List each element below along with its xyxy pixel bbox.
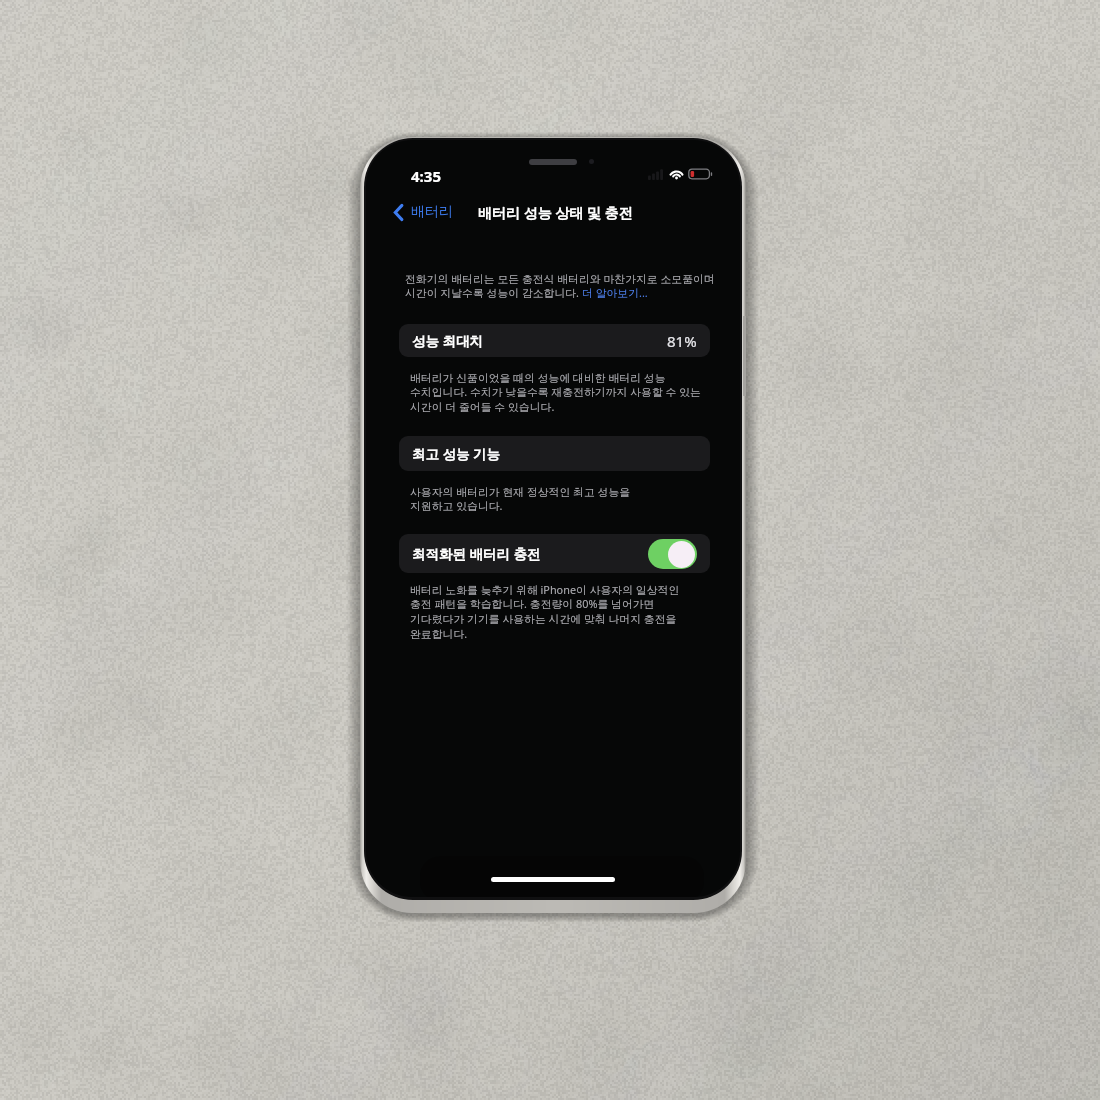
button[interactable]: Optimized Battery Charging toggle, on [648, 539, 697, 569]
button[interactable]: 최적화된 배터리 충전 [399, 534, 710, 573]
button[interactable]: Back to 배터리 [390, 200, 457, 224]
staticText: 배터리 노화를 늦추기 위해 iPhone이 사용자의 일상적인 충전 패턴을 … [410, 582, 680, 642]
staticText: 시간이 지날수록 성능이 감소합니다. [405, 285, 580, 300]
staticText: 배터리 성능 상태 및 충전 [478, 203, 633, 222]
button[interactable]: 더 알아보기... [582, 285, 648, 300]
staticText: 전화기의 배터리는 모든 충전식 배터리와 마찬가지로 소모품이며 [405, 271, 715, 286]
staticText: 최적화된 배터리 충전 [412, 545, 541, 563]
button[interactable]: 성능 최대치 [399, 324, 710, 357]
staticText: 최고 성능 기능 [412, 445, 501, 463]
staticText: 배터리가 신품이었을 때의 성능에 대비한 배터리 성능 수치입니다. 수치가 … [410, 370, 701, 415]
button[interactable]: 최고 성능 기능 [399, 436, 710, 471]
staticText: 성능 최대치 [412, 332, 484, 350]
staticText: 4:35 [411, 166, 441, 186]
staticText: 사용자의 배터리가 현재 정상적인 최고 성능을 지원하고 있습니다. [410, 484, 631, 514]
staticText: 배터리 [411, 203, 453, 221]
staticText: 81% [667, 331, 697, 351]
